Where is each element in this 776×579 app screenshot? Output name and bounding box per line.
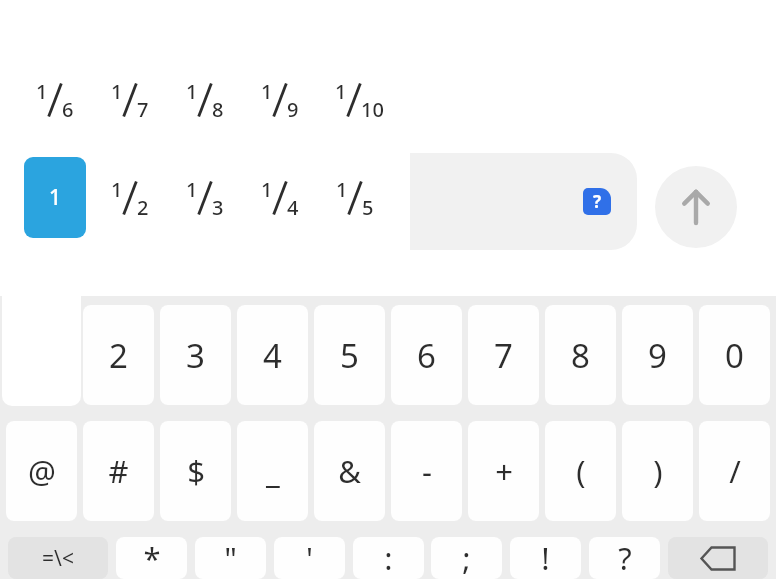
staticText: 1 [336, 176, 348, 203]
button[interactable]: ) [622, 421, 693, 521]
staticText: 2 [109, 333, 128, 378]
staticText: 3 [186, 333, 205, 378]
button[interactable]: Backspace [668, 537, 768, 579]
button[interactable]: ! [510, 537, 581, 579]
staticText: 8 [571, 333, 590, 378]
button[interactable]: ( [545, 421, 616, 521]
button[interactable]: 1 [24, 157, 86, 238]
staticText: 5 [340, 333, 359, 378]
staticText: 4 [287, 194, 299, 221]
staticText: 1 [261, 78, 273, 105]
button[interactable]: ' [274, 537, 345, 579]
button[interactable]: $ [160, 421, 231, 521]
staticText: ; [462, 537, 471, 579]
staticText: # [108, 450, 129, 492]
staticText: + [495, 450, 513, 492]
staticText: $ [187, 450, 205, 492]
staticText: : [384, 537, 393, 579]
button[interactable]: 1 [96, 73, 164, 127]
button[interactable]: 1 [246, 73, 314, 127]
button[interactable]: =\< [8, 537, 108, 579]
staticText: 7 [494, 333, 513, 378]
button[interactable]: 4 [237, 305, 308, 405]
button[interactable]: " [195, 537, 266, 579]
button[interactable]: e [330, 153, 637, 250]
button[interactable]: - [391, 421, 462, 521]
staticText: * [143, 537, 161, 579]
button[interactable]: # [83, 421, 154, 521]
staticText: e [396, 184, 411, 219]
staticText: - [422, 450, 432, 492]
button[interactable]: 7 [468, 305, 539, 405]
staticText: 10 [361, 96, 384, 123]
staticText: 9 [287, 96, 299, 123]
button[interactable]: _ [237, 421, 308, 521]
staticText: ? [618, 537, 632, 579]
staticText: 1 [111, 78, 123, 105]
staticText: 1 [49, 183, 62, 212]
staticText: 1 [186, 176, 198, 203]
button[interactable]: Question suggestion [583, 188, 611, 215]
button[interactable]: 1 [171, 171, 239, 225]
staticText: 3 [212, 194, 224, 221]
button[interactable]: ? [589, 537, 660, 579]
staticText: 1 [261, 176, 273, 203]
staticText: 8 [212, 96, 224, 123]
button[interactable]: 1 [246, 171, 314, 225]
button[interactable]: 6 [391, 305, 462, 405]
button[interactable]: / [699, 421, 770, 521]
staticText: 1 [36, 78, 48, 105]
staticText: & [338, 450, 361, 492]
button[interactable]: 1 [171, 73, 239, 127]
button[interactable]: & [314, 421, 385, 521]
button[interactable]: + [468, 421, 539, 521]
button[interactable]: 5 [314, 305, 385, 405]
button[interactable]: 1 [96, 171, 164, 225]
staticText: 9 [648, 333, 667, 378]
staticText: 7 [137, 96, 149, 123]
staticText: @ [28, 450, 56, 492]
button[interactable]: 3 [160, 305, 231, 405]
staticText: ! [541, 537, 550, 579]
button[interactable]: @ [6, 421, 77, 521]
staticText: ( [576, 450, 586, 492]
button[interactable]: : [353, 537, 424, 579]
button[interactable]: * [116, 537, 187, 579]
button[interactable]: 1 [325, 73, 393, 127]
staticText: =\< [42, 544, 74, 573]
button[interactable]: 2 [83, 305, 154, 405]
staticText: 1 [186, 78, 198, 105]
staticText: 0 [725, 333, 744, 378]
staticText: ? [593, 190, 602, 213]
staticText: _ [266, 450, 280, 492]
button[interactable]: ; [431, 537, 502, 579]
button[interactable]: 0 [699, 305, 770, 405]
staticText: 6 [62, 96, 74, 123]
staticText: ) [653, 450, 663, 492]
staticText: 4 [263, 333, 282, 378]
button[interactable]: 1 [321, 171, 389, 225]
staticText: " [224, 537, 237, 579]
button[interactable]: 8 [545, 305, 616, 405]
button[interactable]: Send [655, 166, 737, 248]
staticText: ' [306, 537, 313, 579]
button[interactable]: 9 [622, 305, 693, 405]
staticText: / [729, 450, 741, 492]
staticText: 5 [362, 194, 374, 221]
staticText: 1 [335, 78, 347, 105]
staticText: 2 [137, 194, 149, 221]
staticText: 6 [417, 333, 436, 378]
staticText: 1 [111, 176, 123, 203]
button[interactable]: 1 [21, 73, 89, 127]
